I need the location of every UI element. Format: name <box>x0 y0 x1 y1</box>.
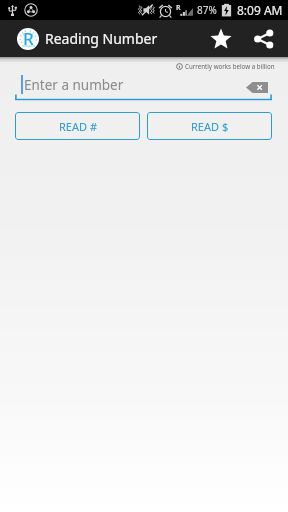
staticText: Currently works below a billion <box>185 62 275 70</box>
staticText: 87% <box>197 3 217 17</box>
staticText: R <box>23 28 34 49</box>
staticText: READ # <box>59 119 97 134</box>
staticText: Reading Number <box>45 29 158 48</box>
staticText: Enter a number <box>24 76 124 94</box>
staticText: READ $ <box>191 119 229 134</box>
button[interactable]: Clear <box>244 79 270 95</box>
staticText: 8:09 AM <box>237 2 283 18</box>
button[interactable]: Favorite <box>202 20 239 57</box>
button[interactable]: READ # <box>15 112 140 140</box>
button[interactable]: READ $ <box>147 112 272 140</box>
button[interactable]: Share <box>245 20 282 57</box>
staticText: R <box>176 3 181 13</box>
